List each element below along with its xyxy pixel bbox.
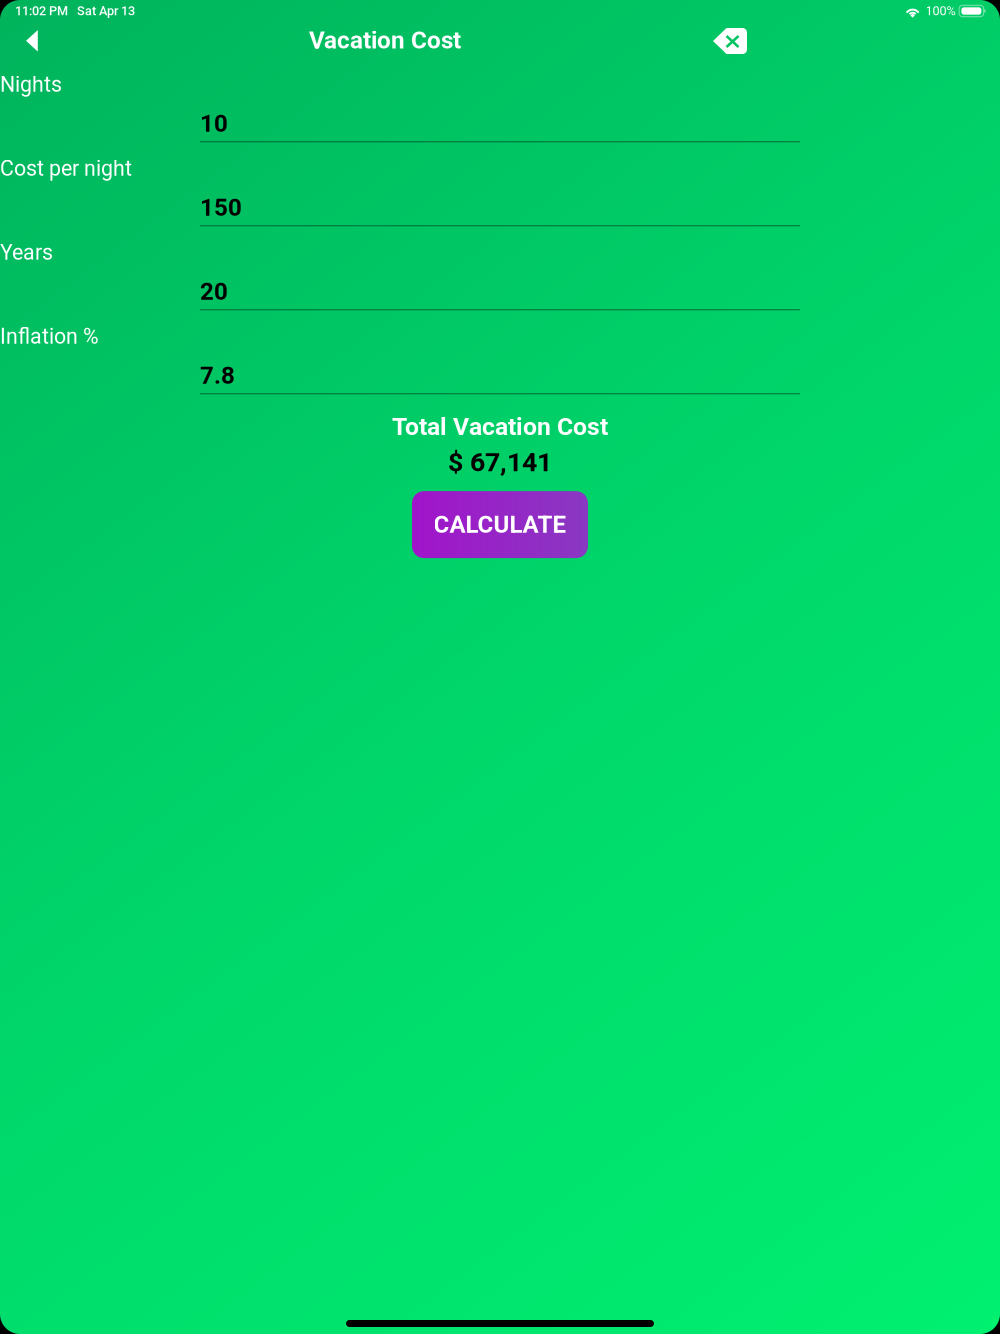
- staticText: Years: [0, 240, 53, 265]
- staticText: Cost per night: [0, 156, 132, 181]
- button[interactable]: Inflation %: [200, 352, 800, 394]
- staticText: 150: [200, 193, 242, 222]
- staticText: $ 67,141: [448, 446, 552, 478]
- button[interactable]: Back: [12, 22, 52, 60]
- staticText: Sat Apr 13: [77, 4, 135, 18]
- staticText: CALCULATE: [433, 511, 566, 539]
- button[interactable]: CALCULATE: [412, 491, 588, 558]
- button[interactable]: Years: [200, 268, 800, 310]
- button[interactable]: Cost per night: [200, 184, 800, 226]
- staticText: Total Vacation Cost: [392, 412, 608, 441]
- button[interactable]: Nights: [200, 100, 800, 142]
- staticText: 20: [200, 277, 228, 306]
- staticText: 7.8: [200, 361, 235, 390]
- button[interactable]: Clear: [708, 22, 752, 60]
- staticText: 100%: [926, 4, 956, 18]
- staticText: Inflation %: [0, 324, 99, 349]
- staticText: 11:02 PM: [15, 4, 68, 18]
- staticText: Nights: [0, 72, 62, 97]
- staticText: 10: [200, 109, 228, 138]
- staticText: Vacation Cost: [309, 26, 461, 54]
